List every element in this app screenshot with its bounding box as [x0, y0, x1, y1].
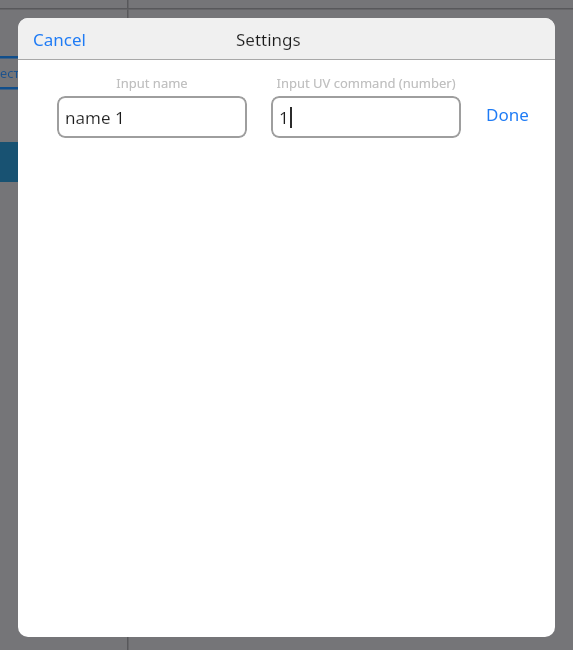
staticText: name 1	[65, 106, 125, 129]
staticText: Settings	[236, 28, 301, 51]
staticText: Done	[486, 103, 529, 126]
staticText: Input UV command (number)	[276, 74, 456, 92]
button[interactable]: Cancel	[18, 20, 98, 59]
button[interactable]: 1	[271, 96, 461, 138]
button[interactable]: name 1	[57, 96, 247, 138]
staticText: ест	[0, 64, 20, 82]
button[interactable]: Done	[473, 93, 542, 136]
staticText: 1	[279, 106, 289, 129]
staticText: Cancel	[33, 28, 86, 51]
staticText: Input name	[116, 74, 188, 92]
